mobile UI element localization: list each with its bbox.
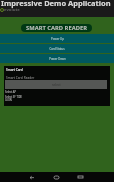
staticText: Smart Card Reader <box>6 76 35 80</box>
staticText: Select AP <box>5 90 17 94</box>
button[interactable]: Card Status <box>0 44 114 53</box>
staticText: Smart Card <box>6 68 23 72</box>
button[interactable]: Recent apps <box>75 172 85 182</box>
staticText: Impressive Demo Application <box>1 0 111 8</box>
staticText: Power Down <box>49 57 66 61</box>
staticText: GUIN <box>5 98 12 102</box>
button[interactable]: Home <box>51 172 61 182</box>
staticText: evolute <box>4 7 20 13</box>
button[interactable]: Back <box>26 172 36 182</box>
staticText: Select 3F TIDE <box>5 95 23 99</box>
button[interactable]: Power Down <box>0 54 114 63</box>
staticText: Card Status <box>49 47 65 51</box>
button[interactable]: Power Up <box>0 34 114 43</box>
button[interactable]: SMART CARD READER <box>21 24 92 32</box>
staticText: SMART CARD READER <box>26 24 87 32</box>
staticText: Power Up <box>51 37 64 41</box>
staticText: select <box>52 83 61 87</box>
